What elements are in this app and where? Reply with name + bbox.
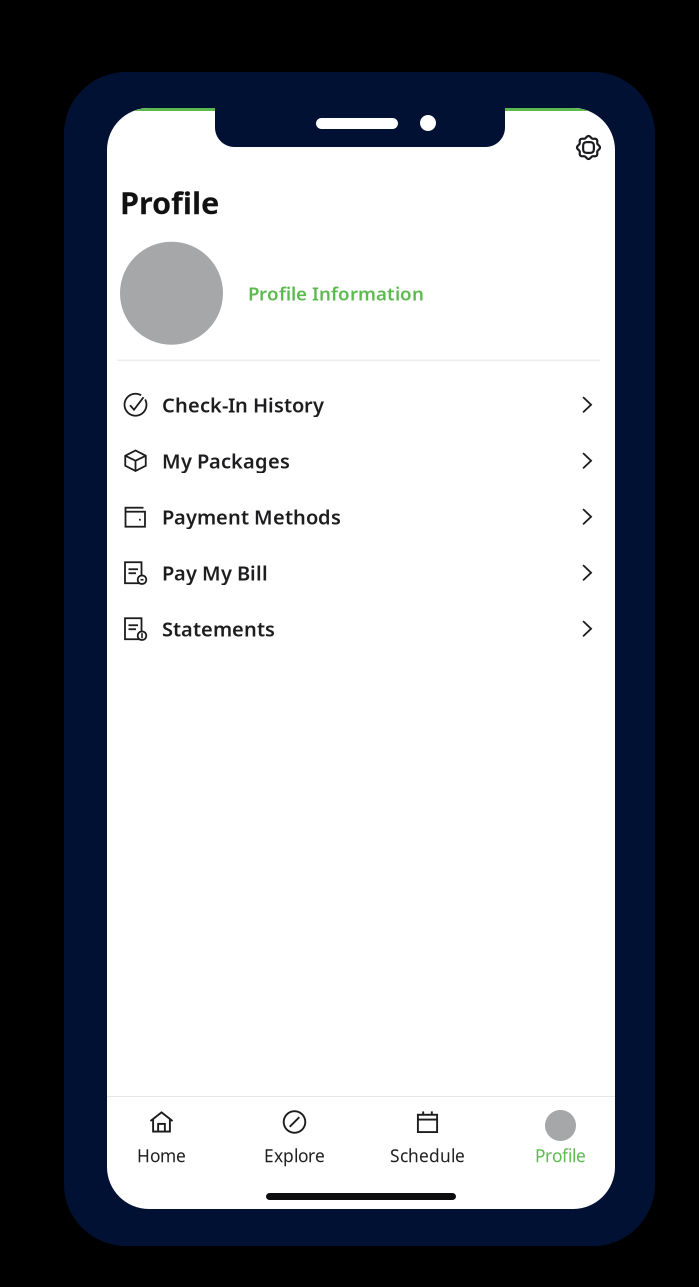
button[interactable]: Profile Information	[223, 267, 424, 320]
staticText: Explore	[264, 1144, 325, 1167]
button[interactable]: Home	[95, 1110, 228, 1167]
staticText: Statements	[162, 615, 275, 642]
button[interactable]: Schedule	[361, 1110, 494, 1167]
staticText: Profile Information	[248, 281, 424, 306]
button[interactable]: Profile	[494, 1110, 627, 1167]
button[interactable]: Statements	[107, 601, 615, 657]
staticText: Payment Methods	[162, 503, 341, 530]
button[interactable]: Check-In History	[107, 377, 615, 433]
button[interactable]: My Packages	[107, 433, 615, 489]
button[interactable]: Settings	[568, 127, 609, 168]
staticText: Profile	[535, 1144, 586, 1167]
staticText: Check-In History	[162, 391, 324, 418]
staticText: Home	[137, 1144, 186, 1167]
staticText: Pay My Bill	[162, 559, 268, 586]
button[interactable]: Pay My Bill	[107, 545, 615, 601]
staticText: Schedule	[390, 1144, 465, 1167]
button[interactable]: Payment Methods	[107, 489, 615, 545]
button[interactable]: Explore	[228, 1110, 361, 1167]
staticText: My Packages	[162, 447, 290, 474]
staticText: Profile	[120, 182, 219, 223]
